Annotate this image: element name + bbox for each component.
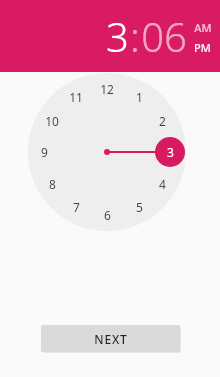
staticText: 11 [69,89,83,105]
button[interactable]: 7 [63,198,89,216]
staticText: 7 [73,199,80,215]
button[interactable]: 12 [94,80,120,98]
button[interactable]: 3 [105,9,130,63]
button[interactable]: 2 [149,112,175,130]
button[interactable]: 3 [157,143,183,161]
staticText: 3 [106,9,129,63]
staticText: 06 [141,9,187,63]
staticText: 10 [45,113,59,129]
button[interactable]: 8 [39,175,65,193]
button[interactable]: 1 [126,88,152,106]
staticText: 2 [159,113,166,129]
staticText: 3 [167,144,174,160]
button[interactable]: 9 [31,143,57,161]
staticText: 12 [100,81,114,97]
staticText: 4 [159,176,166,192]
staticText: 5 [136,199,143,215]
button[interactable]: 4 [149,175,175,193]
staticText: : [130,9,140,63]
button[interactable]: 10 [39,112,65,130]
staticText: NEXT [94,331,128,347]
staticText: 9 [41,144,48,160]
button[interactable]: 06 [140,9,188,63]
staticText: 6 [104,207,111,223]
button[interactable]: AM [194,20,212,35]
button[interactable]: 5 [126,198,152,216]
button[interactable]: 6 [94,206,120,224]
button[interactable]: NEXT [41,325,180,352]
staticText: PM [194,40,211,55]
staticText: 1 [136,89,143,105]
staticText: AM [194,20,212,35]
button[interactable]: 11 [63,88,89,106]
button[interactable]: PM [194,40,211,55]
staticText: 8 [49,176,56,192]
